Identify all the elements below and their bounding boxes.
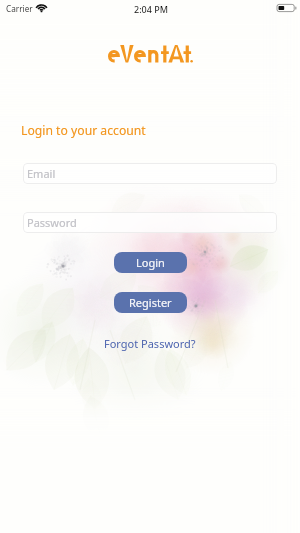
staticText: Email xyxy=(27,166,56,181)
staticText: Carrier xyxy=(6,3,33,14)
staticText: Login to your account xyxy=(21,122,146,139)
staticText: 2:04 PM xyxy=(134,3,168,15)
button[interactable]: Password xyxy=(23,212,277,233)
staticText: Login xyxy=(136,255,165,270)
other: eVentAt xyxy=(108,45,193,64)
button[interactable]: Email xyxy=(23,163,277,184)
button[interactable]: Register xyxy=(114,292,187,313)
staticText: Password xyxy=(27,215,77,230)
button[interactable]: Login xyxy=(114,252,187,273)
staticText: Register xyxy=(129,295,172,310)
button[interactable]: Forgot Password? xyxy=(96,334,204,353)
staticText: Forgot Password? xyxy=(104,336,196,351)
